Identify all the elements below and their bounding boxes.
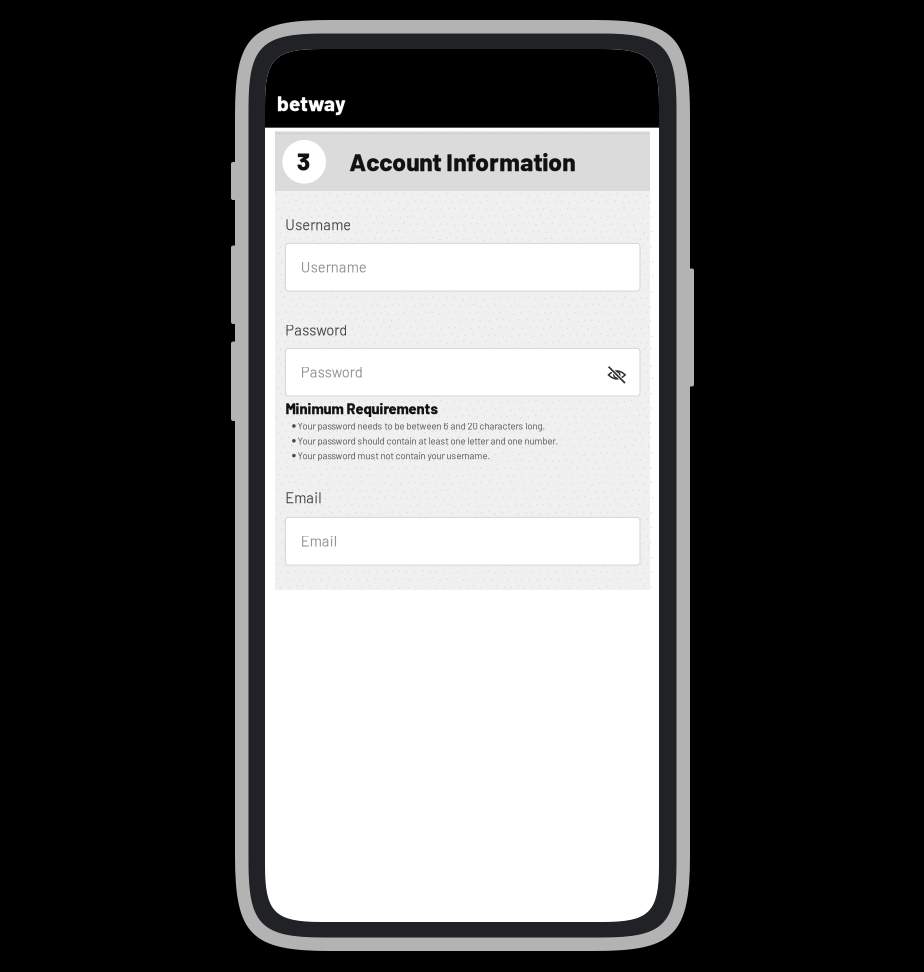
button[interactable]: Email: [285, 517, 640, 565]
button[interactable]: Username: [285, 243, 640, 291]
button[interactable]: betway: [265, 49, 659, 128]
staticText: Username: [285, 216, 351, 233]
staticText: Password: [285, 321, 347, 338]
staticText: Password: [301, 363, 363, 380]
staticText: 3: [297, 146, 310, 175]
staticText: Your password must not contain your user…: [297, 450, 490, 461]
staticText: Email: [301, 532, 337, 549]
staticText: Account Information: [349, 147, 575, 176]
staticText: Minimum Requirements: [286, 399, 438, 417]
staticText: Your password should contain at least on…: [297, 435, 558, 446]
button[interactable]: Password: [285, 348, 640, 396]
staticText: betway: [277, 91, 346, 115]
staticText: Your password needs to be between 6 and …: [297, 420, 545, 431]
staticText: Username: [301, 258, 367, 275]
staticText: Email: [285, 488, 321, 506]
